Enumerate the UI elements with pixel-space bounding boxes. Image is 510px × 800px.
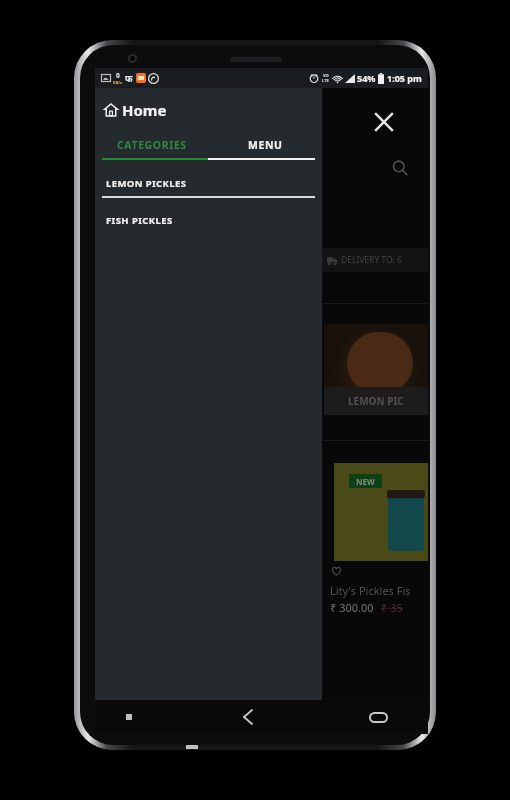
button[interactable]: FISH PICKLES bbox=[95, 208, 322, 245]
staticText: 0 bbox=[116, 71, 120, 80]
staticText: फ bbox=[125, 72, 133, 84]
button[interactable]: Back bbox=[206, 700, 317, 734]
staticText: CATEGORIES bbox=[117, 138, 187, 152]
button[interactable]: LEMON PICKLES bbox=[95, 171, 322, 208]
staticText: 54% bbox=[357, 72, 376, 84]
staticText: Lity's Pickles Fis bbox=[330, 583, 411, 598]
staticText: 1:05 pm bbox=[387, 72, 422, 84]
staticText: VO bbox=[323, 73, 329, 78]
button[interactable]: Home bbox=[317, 700, 428, 734]
staticText: LTE bbox=[322, 78, 329, 83]
staticText: MENU bbox=[248, 138, 283, 152]
staticText: DELIVERY TO: 6 bbox=[341, 254, 402, 266]
button[interactable]: Close bbox=[360, 98, 408, 146]
button[interactable]: CATEGORIES bbox=[95, 132, 208, 158]
staticText: ₹ 35 bbox=[381, 600, 403, 615]
button[interactable]: Home bbox=[95, 88, 322, 132]
staticText: ₹ 300.00 bbox=[330, 600, 374, 615]
button[interactable]: Recents bbox=[95, 700, 206, 734]
button[interactable]: MENU bbox=[208, 132, 322, 158]
staticText: NEW bbox=[356, 476, 375, 487]
staticText: FISH PICKLES bbox=[106, 214, 173, 227]
staticText: LEMON PICKLES bbox=[106, 177, 187, 190]
staticText: LEMON PIC bbox=[348, 394, 404, 408]
staticText: KB/s bbox=[113, 80, 122, 85]
staticText: Home bbox=[122, 100, 167, 120]
